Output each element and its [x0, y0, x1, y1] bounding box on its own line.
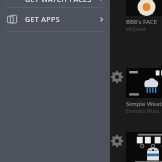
button[interactable]: Settings [0, 128, 162, 162]
staticText: Simple Weath [126, 100, 162, 108]
button[interactable]: Settings [110, 134, 124, 148]
button[interactable]: Settings [110, 70, 124, 84]
staticText: GET WATCH FACES [25, 0, 98, 2]
staticText: GET APPS [25, 15, 98, 25]
button[interactable]: GET WATCH FACES [0, 0, 110, 7]
button[interactable]: GET APPS [0, 8, 110, 31]
staticText: Evandro Muta [126, 108, 159, 115]
button[interactable]: BB8's FACE [0, 0, 162, 46]
staticText: BB8's FACE [126, 18, 158, 26]
staticText: e4Quest [126, 26, 146, 33]
button[interactable]: Settings [0, 64, 162, 128]
